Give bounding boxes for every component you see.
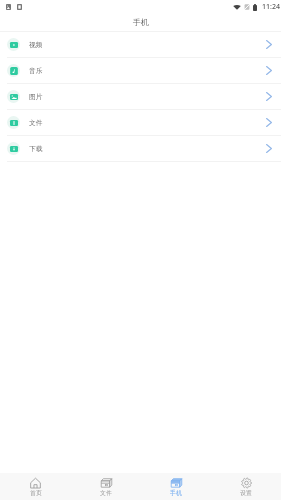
button[interactable]: 文件 [0, 110, 281, 135]
staticText: 设置 [240, 489, 252, 496]
staticText: 手机 [170, 489, 182, 496]
button[interactable]: 视频 [0, 32, 281, 57]
staticText: 手机 [133, 17, 149, 27]
staticText: 11:24 [262, 2, 280, 12]
staticText: 音乐 [29, 67, 43, 75]
staticText: 文件 [29, 119, 43, 127]
staticText: 首页 [30, 489, 42, 496]
button[interactable]: 手机 [141, 473, 211, 500]
button[interactable]: 设置 [211, 473, 281, 500]
staticText: 图片 [29, 93, 43, 101]
button[interactable]: 首页 [0, 473, 71, 500]
button[interactable]: 文件 [71, 473, 141, 500]
staticText: 文件 [100, 489, 112, 496]
button[interactable]: 下载 [0, 136, 281, 161]
staticText: 下载 [29, 145, 43, 153]
button[interactable]: 音乐 [0, 58, 281, 83]
staticText: 视频 [29, 41, 43, 49]
button[interactable]: 图片 [0, 84, 281, 109]
